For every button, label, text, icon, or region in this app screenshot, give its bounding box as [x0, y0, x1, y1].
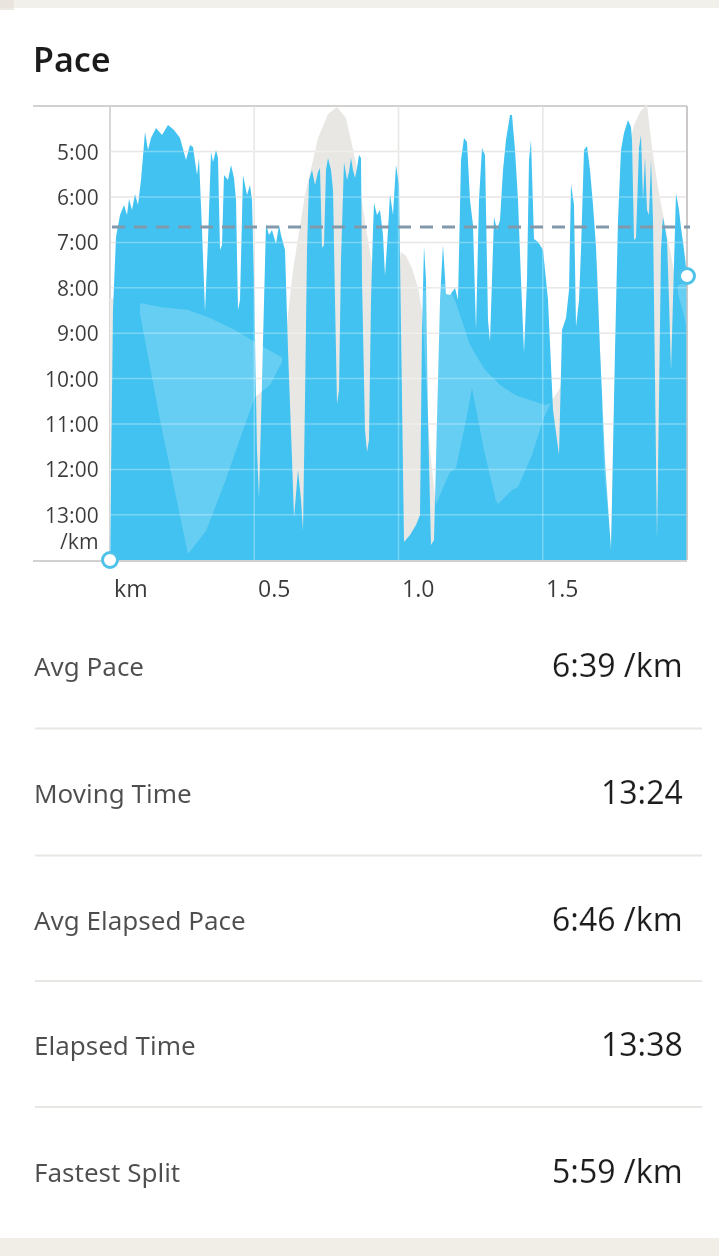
- staticText: 6:46 /km: [552, 897, 683, 941]
- staticText: 13:00: [45, 501, 99, 530]
- staticText: 7:00: [57, 228, 99, 257]
- staticText: 5:00: [57, 138, 99, 167]
- staticText: 8:00: [57, 274, 99, 303]
- staticText: 13:38: [601, 1022, 683, 1066]
- staticText: /km: [60, 527, 99, 556]
- staticText: Moving Time: [34, 775, 192, 810]
- button[interactable]: Avg Elapsed Pace: [0, 887, 719, 951]
- staticText: Fastest Split: [34, 1154, 181, 1189]
- staticText: Elapsed Time: [34, 1027, 196, 1062]
- staticText: 11:00: [45, 410, 99, 439]
- staticText: 12:00: [45, 455, 99, 484]
- staticText: 6:39 /km: [552, 643, 683, 687]
- staticText: 9:00: [57, 319, 99, 348]
- staticText: Pace: [33, 36, 111, 82]
- staticText: 0.5: [258, 572, 291, 603]
- button[interactable]: Elapsed Time: [0, 1012, 719, 1076]
- button[interactable]: Avg Pace: [0, 633, 719, 697]
- staticText: Avg Pace: [34, 648, 145, 683]
- button[interactable]: Fastest Split: [0, 1139, 719, 1203]
- staticText: 1.5: [546, 572, 579, 603]
- staticText: 5:59 /km: [552, 1149, 683, 1193]
- button[interactable]: Moving Time: [0, 760, 719, 824]
- staticText: 6:00: [57, 183, 99, 212]
- staticText: km: [114, 572, 148, 603]
- staticText: Avg Elapsed Pace: [34, 902, 246, 937]
- staticText: 13:24: [601, 770, 683, 814]
- staticText: 10:00: [45, 365, 99, 394]
- staticText: 1.0: [402, 572, 435, 603]
